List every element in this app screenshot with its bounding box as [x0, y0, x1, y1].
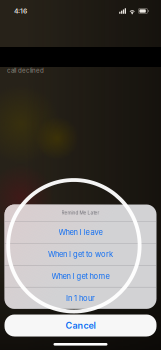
staticText: 4:16: [14, 7, 27, 15]
button[interactable]: When I leave: [4, 222, 156, 243]
staticText: When I get home: [51, 272, 109, 281]
staticText: When I get to work: [48, 250, 113, 259]
button[interactable]: Cancel: [4, 314, 156, 336]
staticText: call declined: [7, 67, 44, 74]
staticText: In 1 hour: [66, 294, 95, 303]
staticText: Cancel: [65, 320, 95, 331]
staticText: When I leave: [58, 228, 102, 237]
staticText: Remind Me Later: [61, 210, 99, 216]
button[interactable]: In 1 hour: [4, 287, 156, 309]
button[interactable]: When I get to work: [4, 244, 156, 265]
button[interactable]: When I get home: [4, 265, 156, 287]
